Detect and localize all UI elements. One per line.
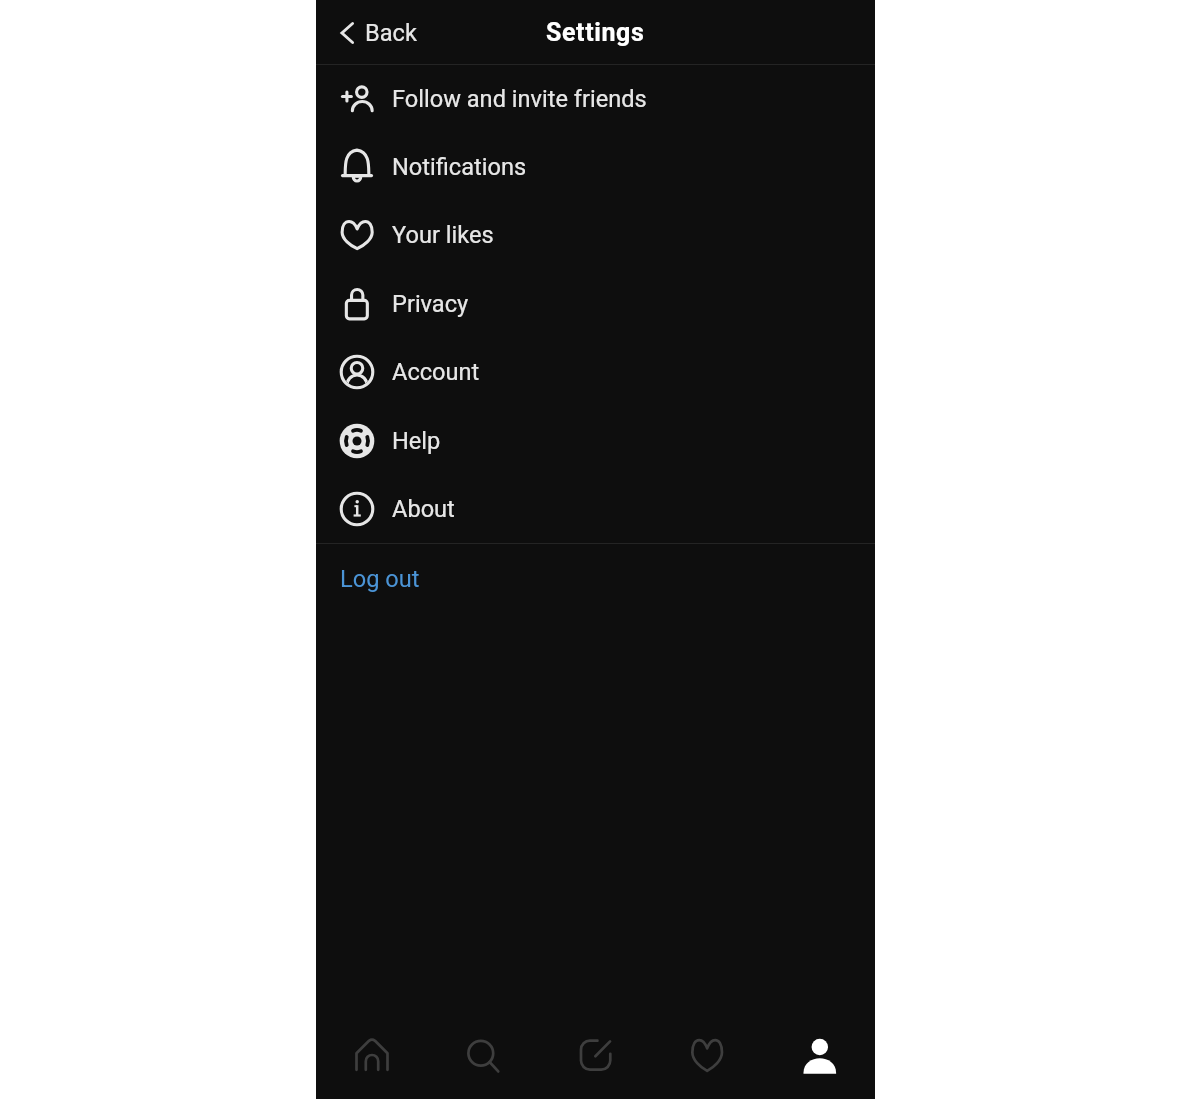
button[interactable]: Back <box>316 0 429 65</box>
staticText: Settings <box>546 18 645 47</box>
button[interactable]: Home <box>316 1011 427 1099</box>
button[interactable]: Your likes <box>316 201 875 269</box>
staticText: Log out <box>340 565 420 593</box>
staticText: Account <box>392 358 480 386</box>
button[interactable]: Search <box>427 1011 539 1099</box>
staticText: Your likes <box>392 221 494 249</box>
button[interactable]: Account <box>316 338 875 406</box>
staticText: Help <box>392 427 441 455</box>
button[interactable]: Help <box>316 406 875 475</box>
button[interactable]: Activity <box>651 1011 763 1099</box>
button[interactable]: New post <box>539 1011 651 1099</box>
staticText: Privacy <box>392 290 469 318</box>
button[interactable]: Privacy <box>316 269 875 338</box>
button[interactable]: About <box>316 475 875 543</box>
button[interactable]: Log out <box>316 544 875 613</box>
staticText: Follow and invite friends <box>392 85 647 113</box>
staticText: Notifications <box>392 153 527 181</box>
staticText: About <box>392 495 455 523</box>
button[interactable]: Profile <box>763 1011 875 1099</box>
button[interactable]: Follow and invite friends <box>316 65 875 133</box>
button[interactable]: Notifications <box>316 133 875 201</box>
staticText: Back <box>365 19 417 47</box>
